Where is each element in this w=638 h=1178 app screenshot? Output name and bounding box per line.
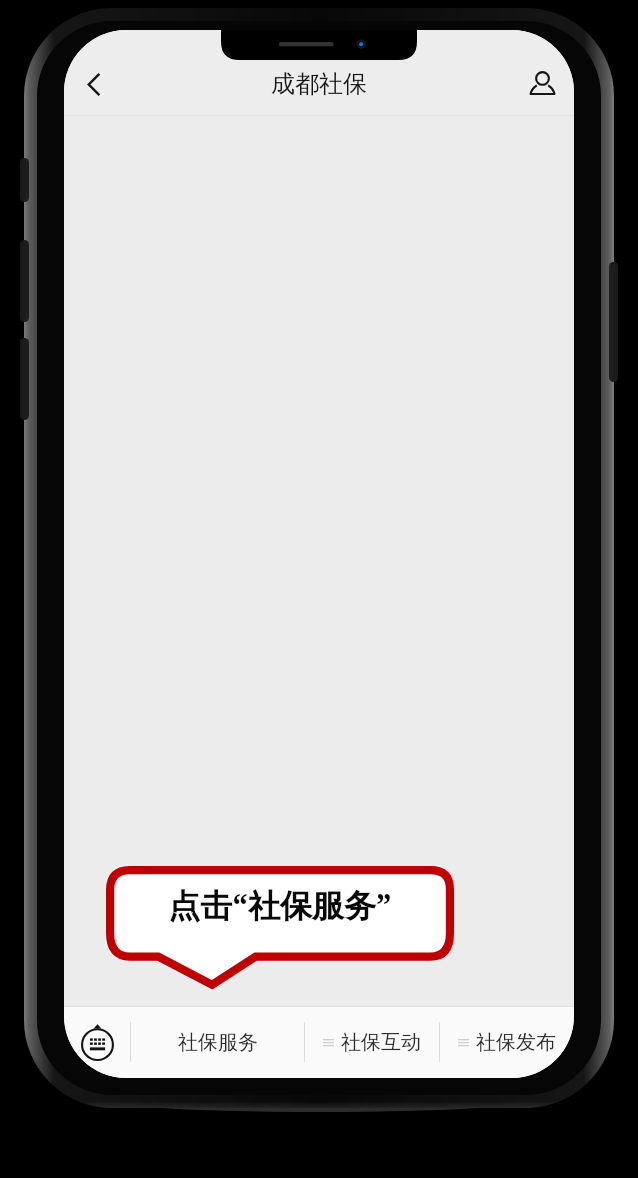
button[interactable]: 社保服务: [131, 1006, 304, 1078]
button[interactable]: Profile: [518, 60, 566, 108]
staticText: 社保发布: [476, 1030, 556, 1055]
button[interactable]: 社保发布: [440, 1006, 574, 1078]
staticText: 社保互动: [341, 1030, 421, 1055]
button[interactable]: 点击“社保服务”: [106, 866, 454, 986]
button[interactable]: Back: [70, 60, 118, 108]
button[interactable]: Keyboard: [64, 1006, 130, 1078]
staticText: 点击“社保服务”: [168, 883, 392, 927]
staticText: 社保服务: [178, 1030, 258, 1055]
staticText: 成都社保: [271, 69, 367, 99]
button[interactable]: 社保互动: [305, 1006, 439, 1078]
